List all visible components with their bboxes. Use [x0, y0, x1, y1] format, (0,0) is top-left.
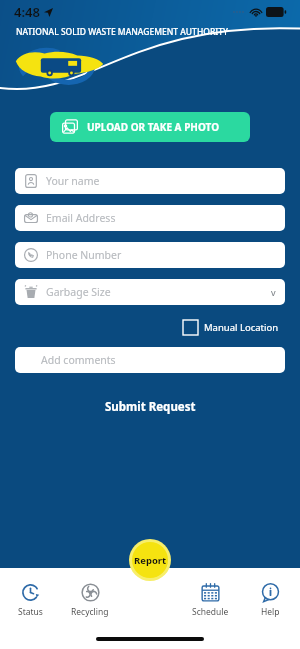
staticText: Manual Location [204, 321, 279, 334]
staticText: NATIONAL SOLID WASTE MANAGEMENT AUTHORIT… [16, 26, 229, 38]
other: Schedule [201, 583, 220, 602]
button[interactable]: Your name [15, 168, 285, 194]
staticText: Report [134, 554, 167, 567]
button[interactable]: Recycling [60, 578, 120, 622]
staticText: Add comments [41, 353, 116, 367]
staticText: Help [261, 606, 280, 618]
other: Recycling [81, 583, 100, 602]
staticText: Submit Request [105, 399, 196, 415]
button[interactable]: Photo [50, 112, 250, 142]
staticText: Email Address [46, 211, 116, 225]
staticText: Schedule [192, 606, 229, 618]
button[interactable]: Status [0, 578, 60, 622]
staticText: Your name [46, 174, 100, 188]
button[interactable]: Phone Number [15, 242, 285, 268]
staticText: Garbage Size [46, 285, 111, 299]
staticText: 4:48 [14, 3, 40, 21]
staticText: Recycling [71, 606, 109, 618]
button[interactable]: Email Address [15, 205, 285, 231]
button[interactable]: Report [129, 539, 171, 581]
button[interactable]: Schedule [180, 578, 240, 622]
other: Help [261, 583, 280, 602]
button[interactable]: Help [240, 578, 300, 622]
button[interactable]: Add comments [15, 347, 285, 373]
staticText: v [271, 286, 276, 298]
staticText: Status [18, 606, 43, 618]
button[interactable]: Garbage Size [15, 279, 285, 305]
button[interactable]: Submit Request [87, 395, 214, 419]
other: Photo [62, 119, 78, 135]
button[interactable]: Manual Location [180, 317, 282, 338]
staticText: Phone Number [46, 248, 122, 262]
other: Status [21, 583, 40, 602]
other: NSWMA logo [12, 42, 108, 90]
staticText: UPLOAD OR TAKE A PHOTO [87, 120, 220, 134]
